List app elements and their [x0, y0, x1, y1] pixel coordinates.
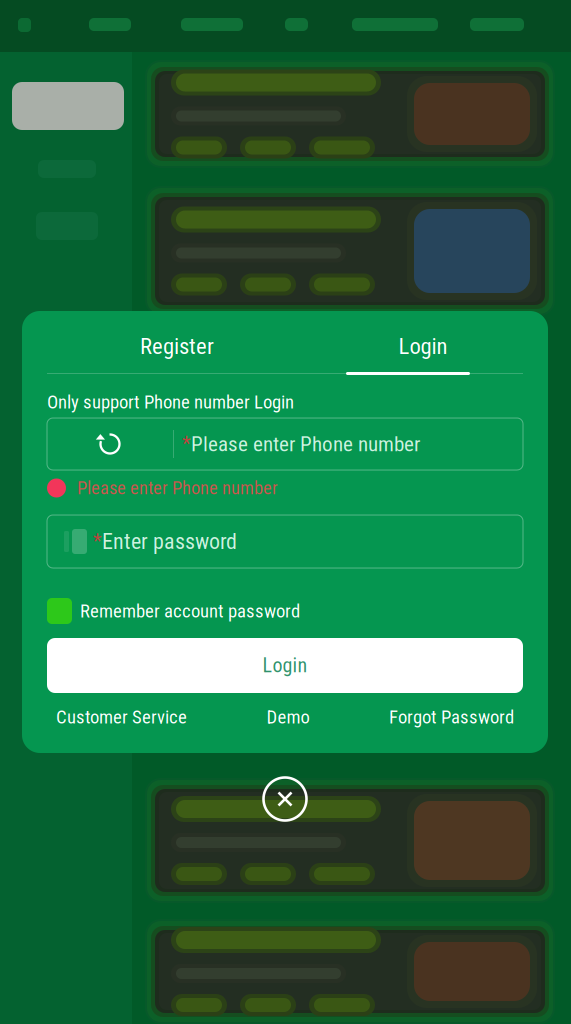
- staticText: Customer Service: [56, 706, 187, 728]
- staticText: Enter password: [102, 529, 237, 554]
- staticText: Only support Phone number Login: [47, 391, 294, 413]
- button[interactable]: Login: [332, 311, 514, 377]
- button[interactable]: Login: [47, 638, 523, 693]
- button[interactable]: Customer Service: [56, 706, 187, 728]
- button[interactable]: Register: [22, 311, 332, 377]
- staticText: Login: [262, 654, 307, 677]
- button[interactable]: Forgot Password: [389, 706, 514, 728]
- staticText: Login: [398, 333, 447, 360]
- staticText: Please enter Phone number: [77, 477, 278, 499]
- staticText: Forgot Password: [389, 706, 514, 728]
- button[interactable]: Demo: [266, 706, 309, 728]
- button[interactable]: Close: [262, 776, 308, 822]
- staticText: Please enter Phone number: [191, 432, 420, 456]
- button[interactable]: Remember account password: [47, 598, 523, 624]
- staticText: Demo: [266, 706, 309, 728]
- staticText: *: [182, 432, 191, 456]
- staticText: Register: [140, 333, 214, 360]
- staticText: *: [93, 530, 102, 553]
- staticText: Remember account password: [80, 600, 300, 622]
